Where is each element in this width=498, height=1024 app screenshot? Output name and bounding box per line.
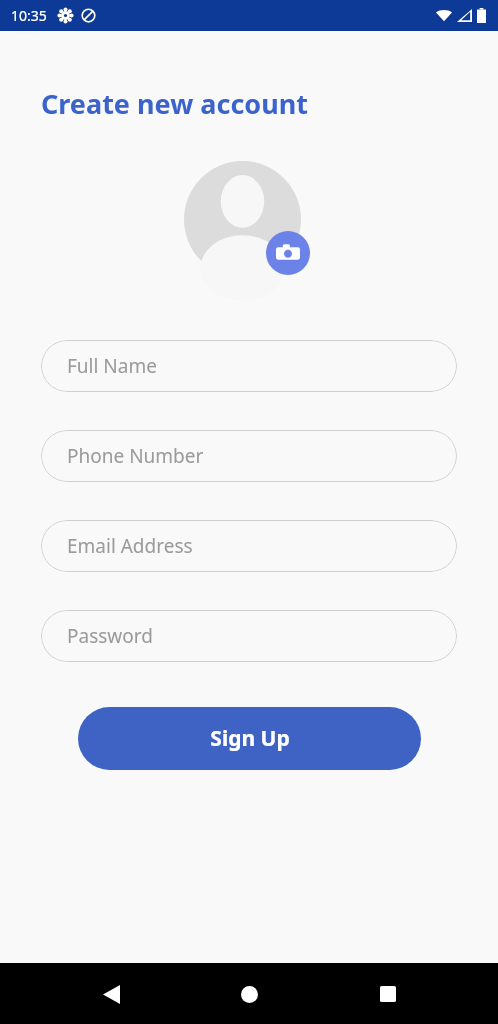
button[interactable]: Full Name: [41, 340, 457, 392]
button[interactable]: Change profile photo: [184, 161, 315, 292]
button[interactable]: Sign Up: [78, 707, 421, 770]
button[interactable]: Recent apps: [360, 966, 416, 1022]
button[interactable]: Phone Number: [41, 430, 457, 482]
button[interactable]: Take photo: [266, 231, 310, 275]
button[interactable]: Back: [83, 966, 139, 1022]
staticText: Password: [67, 623, 153, 649]
staticText: 10:35: [11, 6, 47, 25]
staticText: Email Address: [67, 533, 193, 559]
button[interactable]: Password: [41, 610, 457, 662]
staticText: Create new account: [41, 85, 309, 122]
staticText: Sign Up: [210, 724, 290, 753]
button[interactable]: Home: [221, 966, 277, 1022]
staticText: Full Name: [67, 353, 157, 379]
button[interactable]: Email Address: [41, 520, 457, 572]
staticText: Phone Number: [67, 443, 204, 469]
